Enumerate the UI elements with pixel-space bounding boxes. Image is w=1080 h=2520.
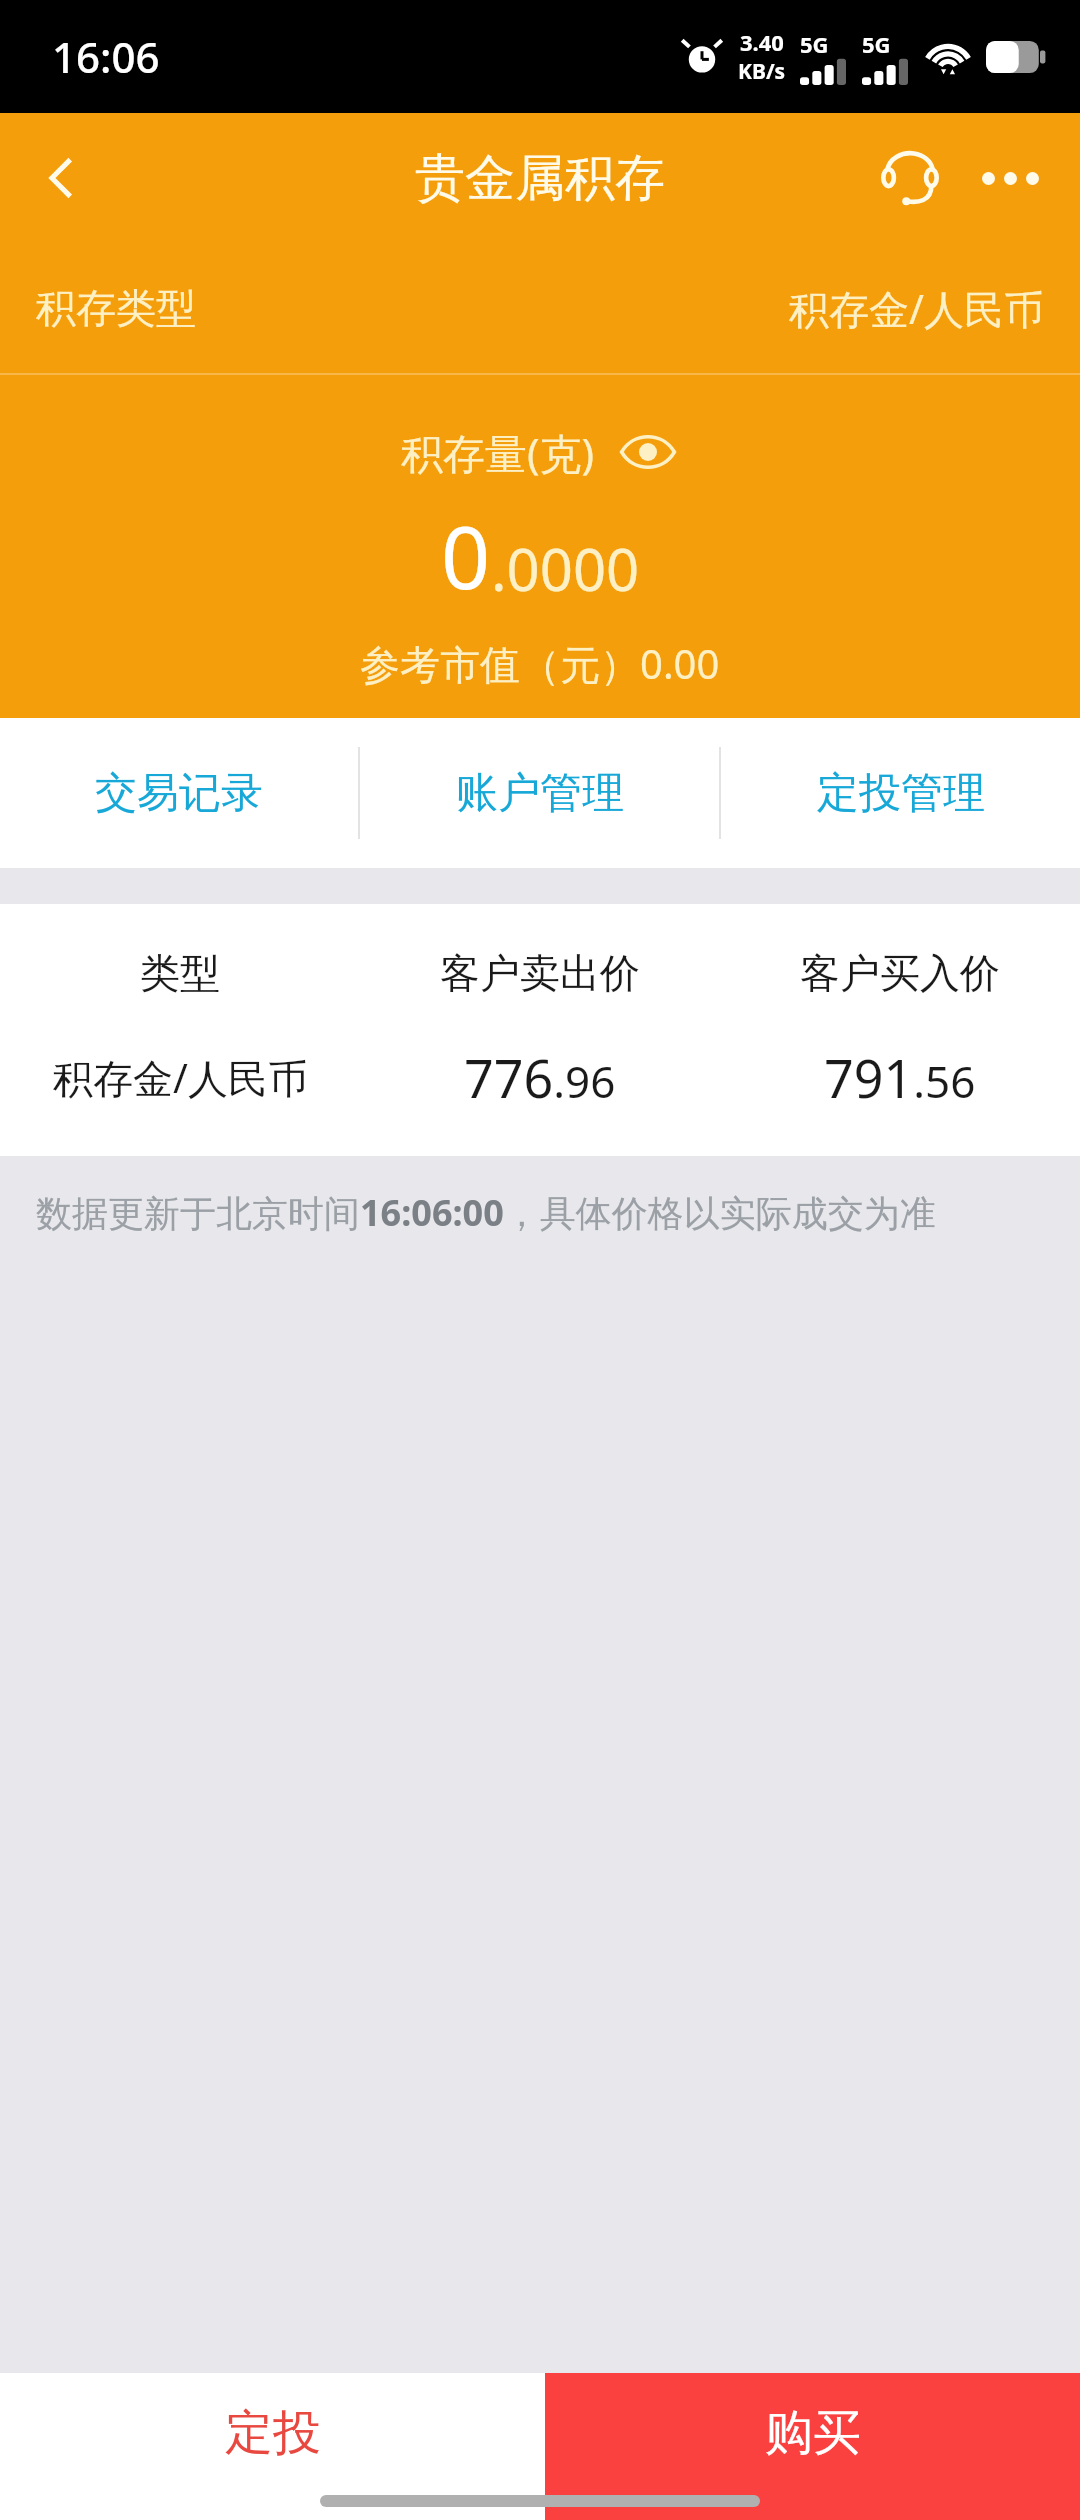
button[interactable]: 定投 (0, 2373, 545, 2493)
staticText: 5G (800, 29, 829, 59)
staticText: 客户卖出价 (440, 948, 640, 998)
button[interactable]: Customer service (870, 138, 950, 218)
staticText: 积存金/人民币 (53, 1050, 308, 1105)
staticText: 791.56 (824, 1042, 976, 1113)
staticText: 购买 (765, 2403, 861, 2463)
button[interactable]: 购买 (545, 2373, 1080, 2493)
staticText: 776.96 (464, 1042, 616, 1113)
staticText: 参考市值（元）0.00 (360, 636, 720, 691)
staticText: 0 (441, 497, 491, 614)
staticText: 积存金/人民币 (789, 281, 1044, 336)
staticText: .0000 (491, 529, 640, 608)
staticText: 3.40 (740, 27, 784, 57)
button[interactable]: 账户管理 (360, 718, 719, 868)
button[interactable]: 定投管理 (721, 718, 1080, 868)
button[interactable]: Back (22, 138, 102, 218)
button[interactable]: 积存类型 (0, 243, 1080, 373)
staticText: KB/s (738, 57, 786, 86)
staticText: 5G (862, 29, 891, 59)
button[interactable]: Toggle balance visibility (617, 421, 679, 483)
staticText: 积存类型 (36, 283, 196, 333)
staticText: 贵金属积存 (415, 147, 665, 210)
staticText: 客户买入价 (800, 948, 1000, 998)
staticText: 积存量(克) (401, 424, 595, 481)
staticText: 定投管理 (817, 767, 985, 820)
staticText: 16:06 (52, 28, 160, 85)
staticText: 交易记录 (95, 767, 263, 820)
button[interactable]: More options (970, 138, 1050, 218)
button[interactable]: 交易记录 (0, 718, 358, 868)
staticText: 账户管理 (456, 767, 624, 820)
staticText: 类型 (140, 948, 220, 998)
staticText: 数据更新于北京时间16:06:00，具体价格以实际成交为准 (36, 1188, 936, 1237)
staticText: 定投 (225, 2403, 321, 2463)
